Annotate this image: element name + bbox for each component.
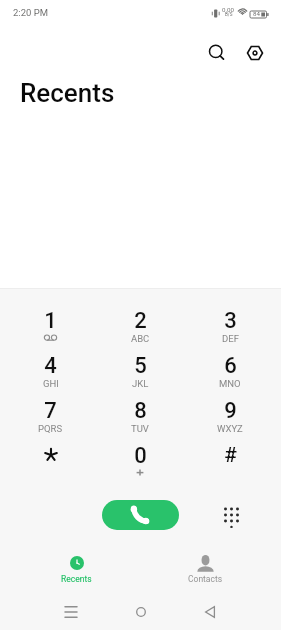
button[interactable]: 4 bbox=[6, 353, 95, 398]
staticText: GHI bbox=[43, 378, 59, 388]
button[interactable]: Call bbox=[102, 500, 179, 530]
staticText: WXYZ bbox=[217, 423, 243, 433]
staticText: Contacts bbox=[188, 574, 223, 584]
button[interactable]: # bbox=[185, 443, 275, 488]
staticText: 9 bbox=[224, 398, 237, 420]
button[interactable]: Settings bbox=[242, 40, 268, 66]
button[interactable] bbox=[6, 443, 95, 488]
button[interactable]: Home bbox=[126, 597, 156, 627]
staticText: TUV bbox=[131, 423, 149, 433]
staticText: 3 bbox=[224, 308, 237, 330]
button[interactable]: 1 bbox=[6, 308, 95, 353]
staticText: 7 bbox=[44, 398, 57, 420]
staticText: ABC bbox=[131, 333, 150, 343]
staticText: B/S bbox=[225, 12, 233, 17]
button[interactable]: 9 bbox=[185, 398, 275, 443]
button[interactable]: Search bbox=[204, 40, 230, 66]
staticText: 2 bbox=[134, 308, 147, 330]
button[interactable]: Recent apps bbox=[56, 597, 86, 627]
button[interactable]: 3 bbox=[185, 308, 275, 353]
staticText: # bbox=[224, 443, 237, 465]
button[interactable]: 2 bbox=[95, 308, 185, 353]
staticText: DEF bbox=[222, 333, 239, 343]
staticText: 0 bbox=[134, 443, 147, 465]
staticText: 84 bbox=[253, 10, 260, 17]
button[interactable]: Contacts bbox=[165, 545, 246, 593]
button[interactable]: Recents bbox=[36, 545, 117, 593]
button[interactable]: 6 bbox=[185, 353, 275, 398]
staticText: 1 bbox=[44, 308, 57, 330]
staticText: 2:20 PM bbox=[13, 7, 48, 18]
staticText: PQRS bbox=[38, 423, 63, 433]
staticText: MNO bbox=[219, 378, 241, 388]
staticText: JKL bbox=[132, 378, 149, 388]
staticText: 0.00 bbox=[222, 6, 235, 13]
staticText: 5 bbox=[134, 353, 147, 375]
button[interactable]: 7 bbox=[6, 398, 95, 443]
button[interactable]: 0 bbox=[95, 443, 185, 488]
button[interactable]: Keypad bbox=[218, 502, 244, 528]
button[interactable]: Back bbox=[195, 597, 225, 627]
staticText: Recents bbox=[20, 78, 115, 108]
staticText: 6 bbox=[224, 353, 237, 375]
staticText: 4 bbox=[44, 353, 57, 375]
button[interactable]: 8 bbox=[95, 398, 185, 443]
staticText: 8 bbox=[134, 398, 147, 420]
button[interactable]: 5 bbox=[95, 353, 185, 398]
staticText: Recents bbox=[61, 574, 92, 584]
